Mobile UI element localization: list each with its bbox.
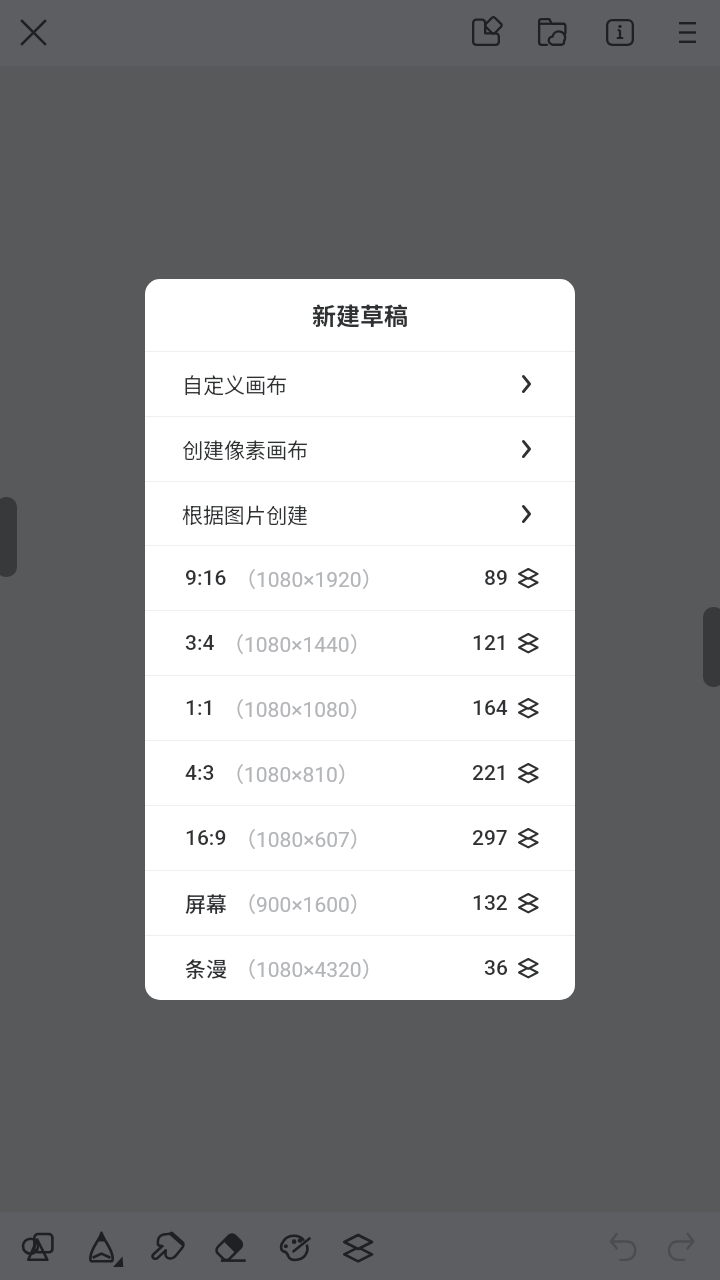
button[interactable]: 根据图片创建 [145,482,575,545]
staticText: 121 [472,631,508,656]
staticText: （1080×4320） [235,953,383,983]
button[interactable]: Open file [524,2,580,62]
staticText: （1080×810） [223,758,359,788]
button[interactable]: Info [592,2,648,62]
staticText: 9:16 [185,566,227,591]
staticText: 16:9 [185,826,227,851]
staticText: 164 [472,696,508,721]
button[interactable]: Smudge [133,1216,205,1280]
staticText: （1080×1920） [235,563,383,593]
button[interactable]: Layers [325,1219,397,1280]
staticText: 屏幕 [185,888,227,918]
button[interactable]: Undo [593,1218,665,1280]
button[interactable]: 3:4 [145,611,575,675]
staticText: 根据图片创建 [182,499,308,529]
staticText: 3:4 [185,631,215,656]
staticText: 89 [484,566,508,591]
button[interactable]: 条漫 [145,936,575,1000]
button[interactable]: Close [3,2,63,62]
button[interactable]: 4:3 [145,741,575,805]
button[interactable]: Eraser [198,1217,270,1280]
staticText: 新建草稿 [312,297,408,332]
button[interactable]: Palette [262,1218,334,1280]
staticText: 条漫 [185,953,227,983]
staticText: （900×1600） [235,888,371,918]
button[interactable]: 16:9 [145,806,575,870]
staticText: 221 [472,761,508,786]
button[interactable]: New canvas [458,3,514,63]
button[interactable]: 自定义画布 [145,352,575,416]
button[interactable]: 1:1 [145,676,575,740]
button[interactable]: Brush [70,1216,142,1280]
button[interactable]: Left panel handle [0,497,17,577]
button[interactable]: Shapes [5,1218,77,1280]
staticText: 132 [472,891,508,916]
button[interactable]: Menu [659,2,715,62]
staticText: 4:3 [185,761,215,786]
staticText: （1080×607） [235,823,371,853]
button[interactable]: 屏幕 [145,871,575,935]
staticText: （1080×1080） [223,693,371,723]
staticText: 1:1 [185,696,215,721]
button[interactable]: Right panel handle [703,607,720,687]
staticText: 297 [472,826,508,851]
staticText: （1080×1440） [223,628,371,658]
button[interactable]: Redo [650,1218,720,1280]
staticText: 36 [484,956,508,981]
button[interactable]: 创建像素画布 [145,417,575,481]
staticText: 自定义画布 [182,369,287,399]
button[interactable]: 9:16 [145,546,575,610]
staticText: 创建像素画布 [182,434,308,464]
